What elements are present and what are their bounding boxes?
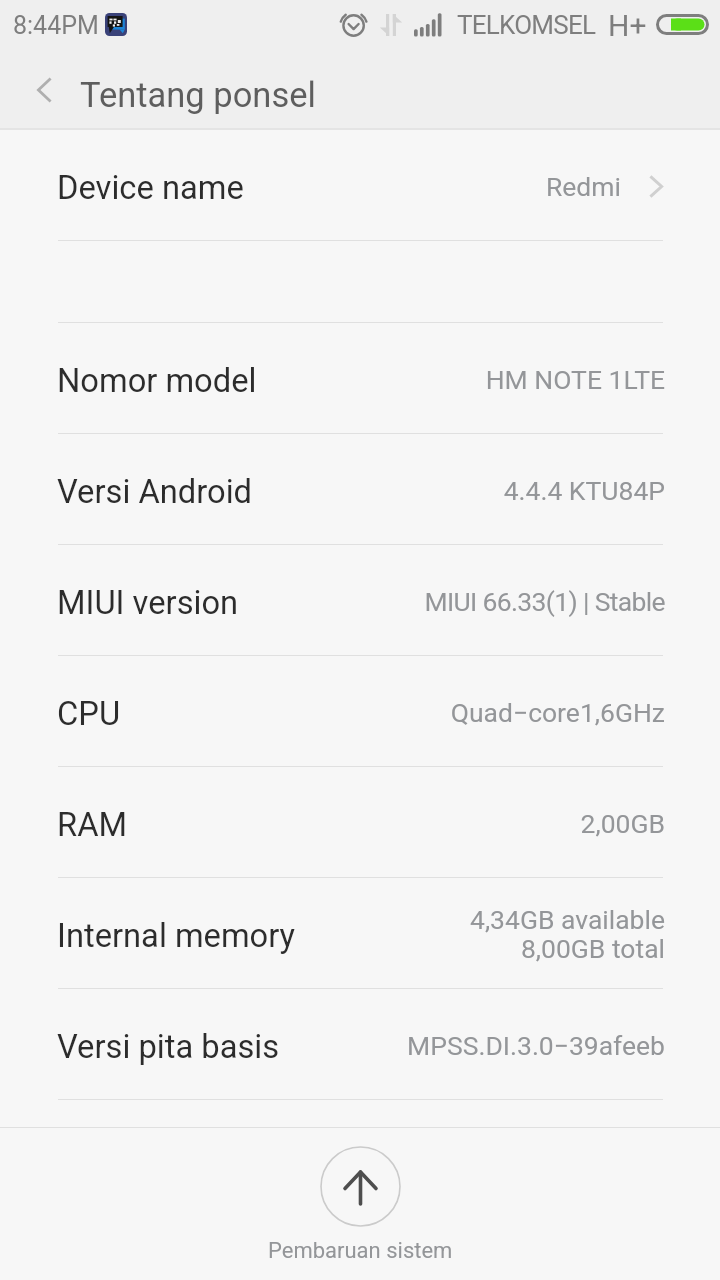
staticText: Tentang ponsel (80, 75, 316, 115)
staticText: Versi Android (57, 473, 253, 511)
button[interactable]: Device name (0, 130, 720, 241)
staticText: Internal memory (57, 917, 296, 955)
staticText: Quad−core1,6GHz (450, 697, 665, 728)
staticText: Device name (57, 169, 244, 207)
staticText: Nomor model (57, 362, 257, 400)
staticText: 4.4.4 KTU84P (503, 475, 665, 506)
staticText: HM NOTE 1LTE (485, 364, 665, 395)
staticText: 8:44PM (13, 11, 99, 40)
staticText: Redmi (545, 171, 621, 202)
staticText: H+ (608, 8, 647, 43)
button[interactable]: RAM (0, 767, 720, 878)
staticText: Pembaruan sistem (268, 1238, 453, 1264)
staticText: MPSS.DI.3.0−39afeeb (407, 1030, 665, 1061)
button[interactable]: Back (0, 48, 340, 128)
button[interactable]: Versi pita basis (0, 989, 720, 1100)
button[interactable]: Nomor model (0, 323, 720, 434)
staticText: 8,00GB total (520, 933, 665, 964)
staticText: 4,34GB available (470, 904, 665, 935)
staticText: MIUI 66.33(1) | Stable (424, 586, 665, 617)
staticText: RAM (57, 806, 128, 844)
button[interactable]: Internal memory (0, 878, 720, 989)
staticText: Versi pita basis (57, 1028, 280, 1066)
staticText: CPU (57, 695, 121, 733)
button[interactable]: CPU (0, 656, 720, 767)
button[interactable]: MIUI version (0, 545, 720, 656)
staticText: MIUI version (57, 584, 239, 622)
staticText: TELKOMSEL (457, 10, 596, 40)
button[interactable]: Versi Android (0, 434, 720, 545)
staticText: 2,00GB (580, 808, 665, 839)
button[interactable]: Pembaruan sistem (268, 1147, 453, 1264)
